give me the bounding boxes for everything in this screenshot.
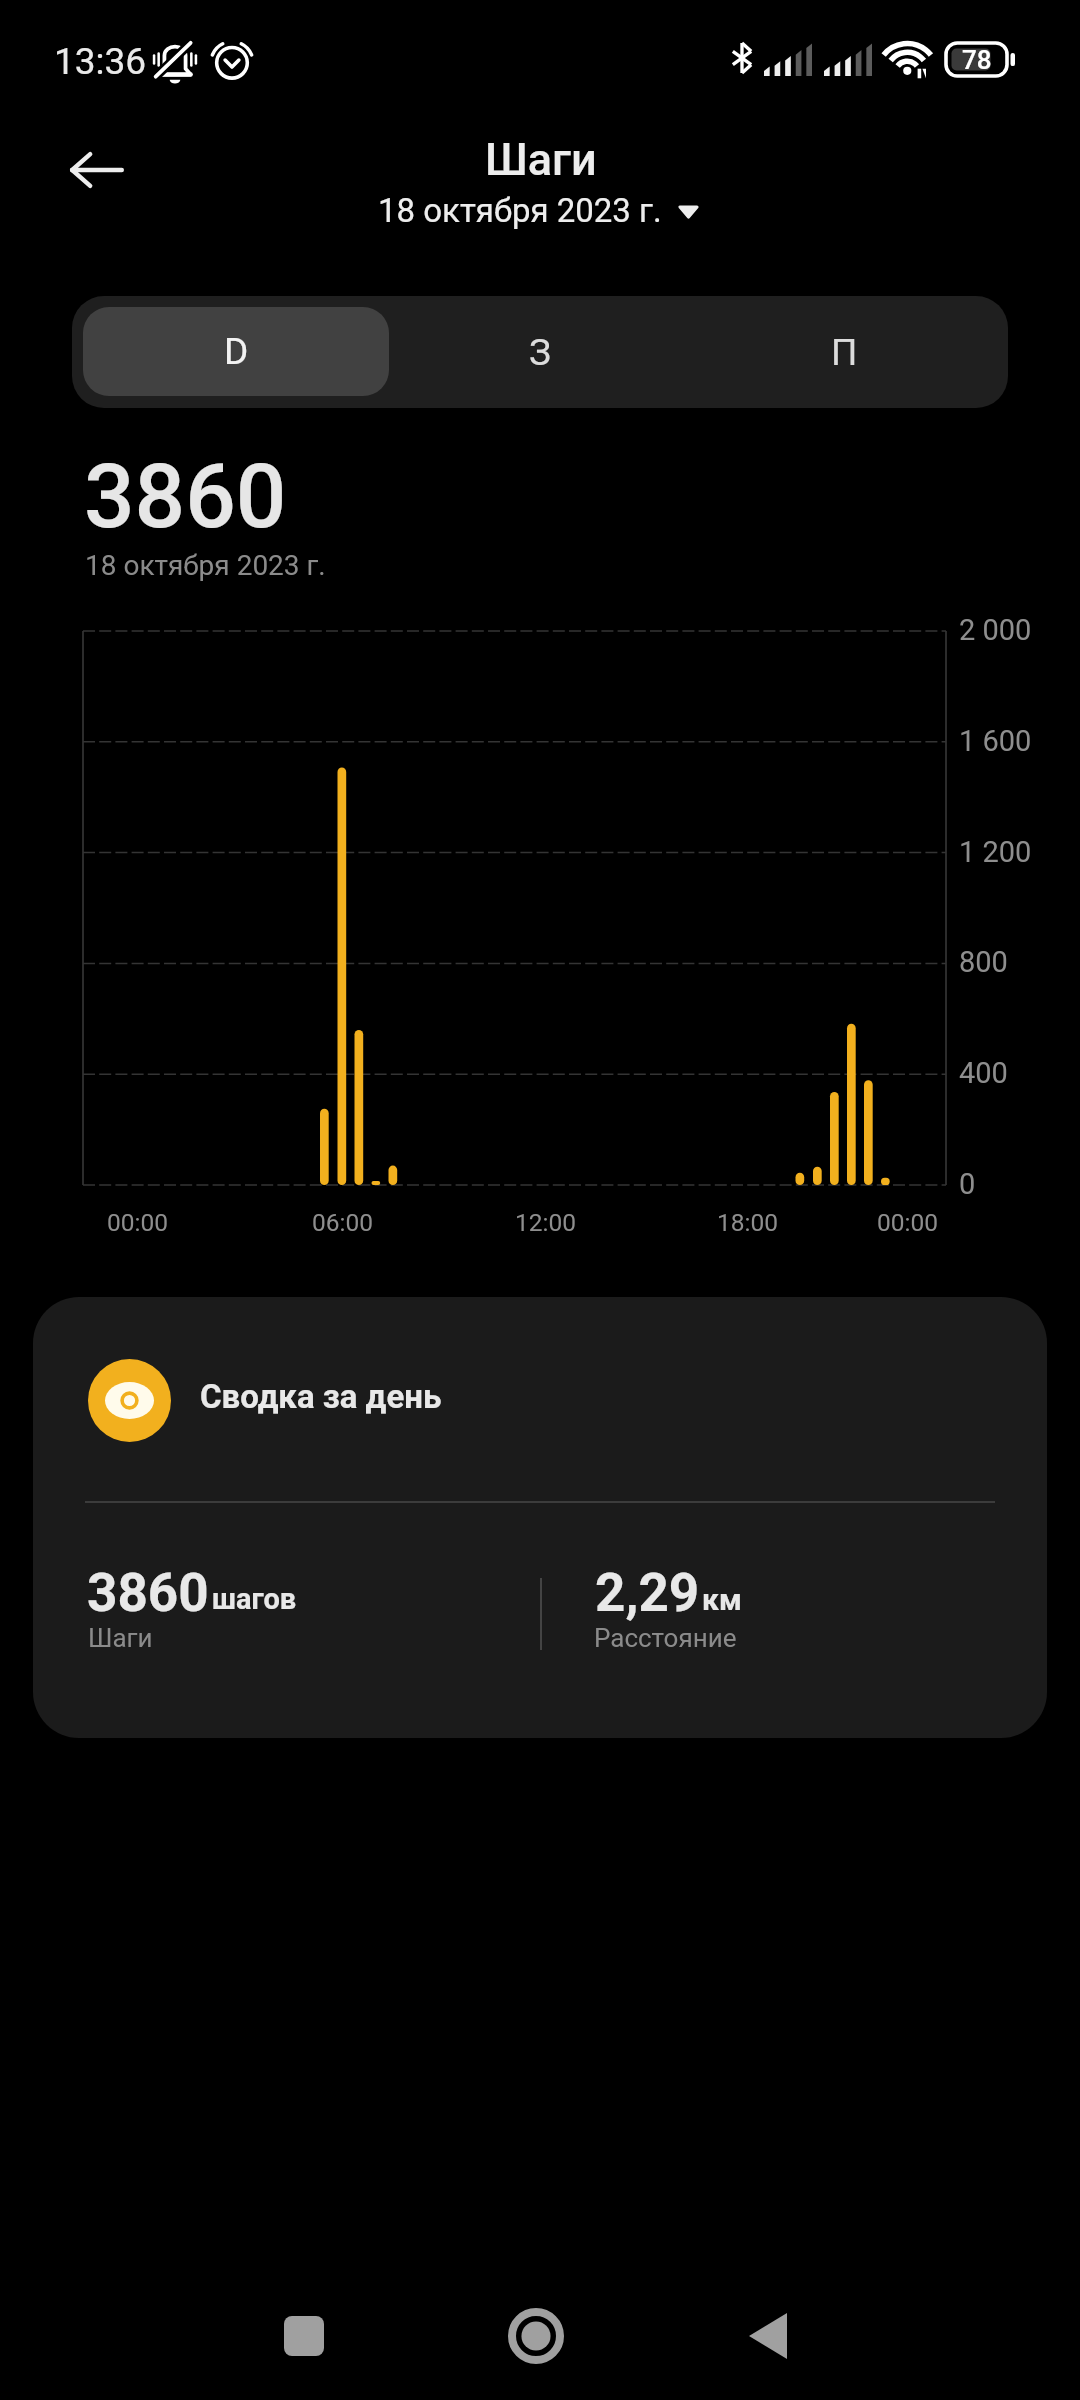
- staticText: 18 октября 2023 г.: [378, 191, 662, 230]
- staticText: Расстояние: [594, 1623, 737, 1653]
- button[interactable]: Recent apps: [254, 2286, 354, 2386]
- button[interactable]: 18 октября 2023 г.: [370, 185, 710, 241]
- staticText: 400: [959, 1056, 1008, 1090]
- staticText: км: [702, 1582, 742, 1617]
- staticText: 13:36: [54, 40, 147, 83]
- staticText: 00:00: [877, 1208, 939, 1237]
- staticText: 1 200: [959, 835, 1032, 869]
- staticText: Шаги: [485, 133, 597, 186]
- staticText: 12:00: [515, 1208, 577, 1237]
- staticText: Сводка за день: [200, 1377, 442, 1416]
- staticText: 800: [959, 945, 1008, 979]
- staticText: 2 000: [959, 613, 1032, 647]
- staticText: 18:00: [717, 1208, 779, 1237]
- button[interactable]: Home: [486, 2286, 586, 2386]
- staticText: 3860: [87, 1562, 209, 1624]
- staticText: З: [529, 331, 551, 374]
- staticText: 00:00: [107, 1208, 169, 1237]
- staticText: D: [224, 330, 249, 373]
- staticText: 18 октября 2023 г.: [85, 549, 326, 582]
- staticText: 3860: [84, 444, 287, 548]
- button[interactable]: З: [392, 300, 688, 404]
- button[interactable]: П: [696, 300, 992, 404]
- staticText: П: [831, 331, 858, 374]
- staticText: шагов: [212, 1582, 297, 1616]
- staticText: 1 600: [959, 724, 1032, 758]
- staticText: Шаги: [88, 1623, 153, 1653]
- button[interactable]: Back: [718, 2286, 818, 2386]
- button[interactable]: Сводка за день: [33, 1297, 1047, 1738]
- staticText: 2,29: [595, 1562, 700, 1624]
- staticText: 06:00: [312, 1208, 374, 1237]
- staticText: 0: [959, 1167, 976, 1201]
- button[interactable]: Back: [41, 125, 152, 214]
- button[interactable]: D: [83, 307, 389, 396]
- staticText: 78: [962, 45, 992, 75]
